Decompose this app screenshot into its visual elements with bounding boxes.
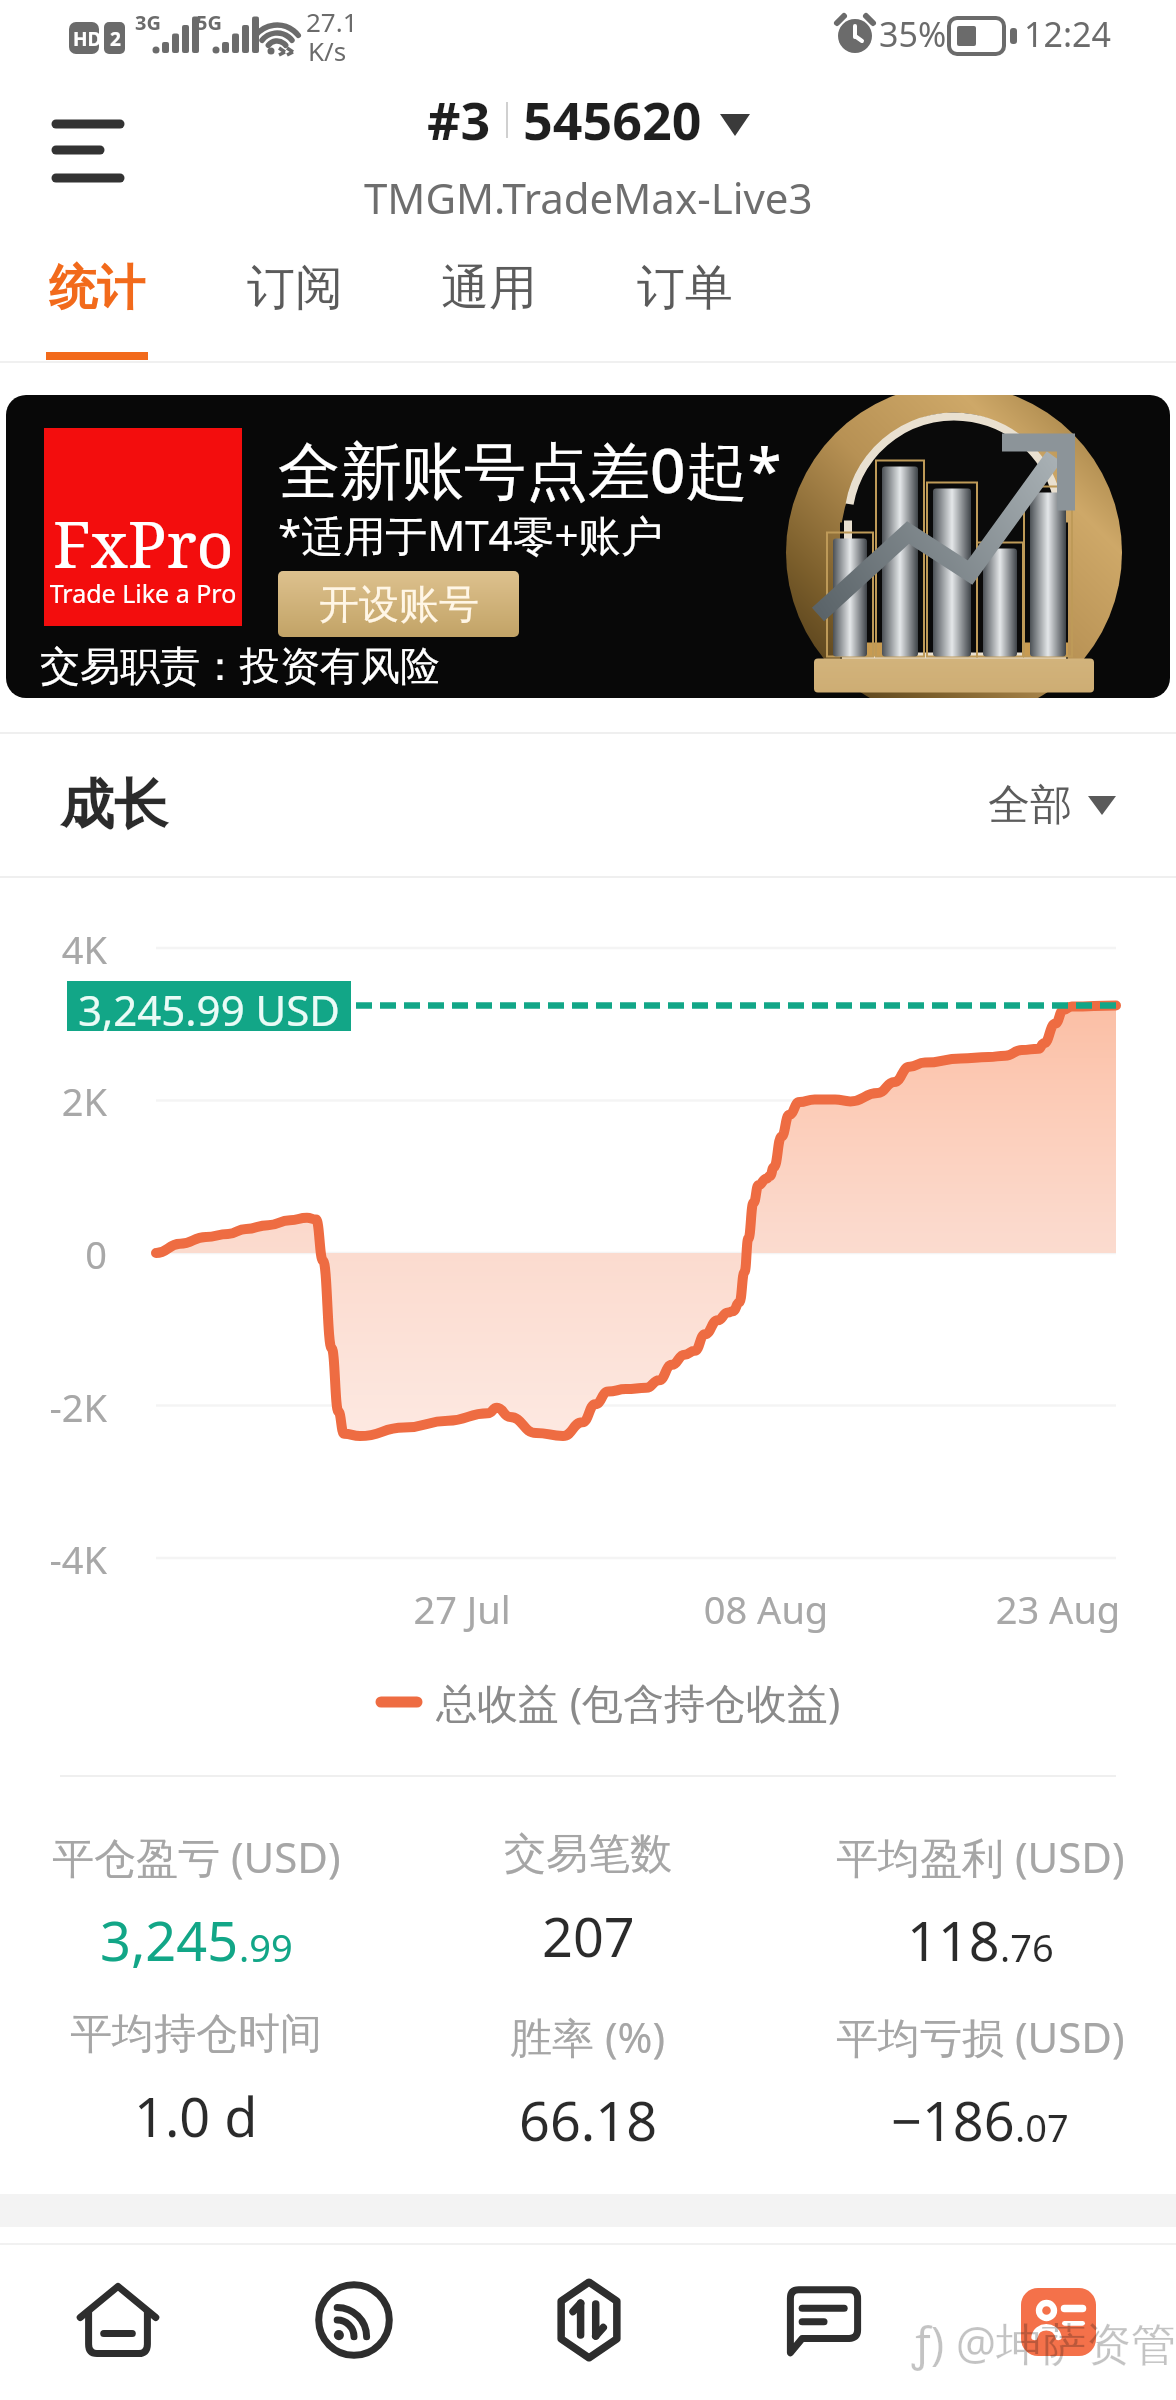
staticText: 平均亏损 (USD) [836, 2008, 1125, 2065]
button[interactable]: Menu [30, 95, 146, 207]
staticText: 全部 [988, 779, 1072, 832]
staticText: 08 Aug [666, 1583, 866, 1635]
staticText: Trade Like a Pro [44, 576, 242, 610]
staticText: 4K [0, 923, 107, 975]
staticText: 胜率 (%) [510, 2008, 666, 2065]
staticText: 27 Jul [362, 1583, 562, 1635]
staticText: 27.1 [306, 4, 358, 39]
staticText: 118 [907, 1903, 1000, 1977]
button[interactable]: Home [0, 2246, 236, 2400]
staticText: 66.18 [519, 2083, 658, 2157]
button[interactable]: 订阅 [218, 240, 372, 362]
staticText: 平仓盈亏 (USD) [52, 1828, 341, 1885]
staticText: −186 [891, 2083, 1015, 2157]
staticText: 开设账号 [319, 579, 479, 629]
staticText: 通用 [441, 258, 537, 318]
staticText: 3G [135, 9, 161, 36]
staticText: 3,245 [100, 1903, 239, 1977]
staticText: -4K [0, 1533, 107, 1585]
staticText: 1.0 d [134, 2079, 258, 2153]
button[interactable]: 开设账号 [278, 571, 519, 637]
staticText: 交易职责：投资有风险 [40, 641, 440, 691]
button[interactable]: Profile [941, 2246, 1176, 2400]
staticText: .99 [239, 1921, 293, 1973]
staticText: 23 Aug [958, 1583, 1158, 1635]
staticText: 平均盈利 (USD) [836, 1828, 1125, 1885]
staticText: 总收益 (包含持仓收益) [436, 1674, 841, 1730]
staticText: HD [73, 26, 102, 52]
button[interactable]: 全部 [988, 779, 1116, 832]
staticText: 2 [110, 26, 121, 52]
staticText: -2K [0, 1381, 107, 1433]
staticText: 订阅 [247, 258, 343, 318]
staticText: 订单 [637, 258, 733, 318]
button[interactable]: Messages [706, 2246, 941, 2400]
staticText: #3 [427, 84, 491, 155]
staticText: 5G [196, 9, 222, 36]
staticText: *适用于MT4零+账户 [278, 506, 663, 563]
staticText: 3,245.99 USD [78, 981, 340, 1031]
staticText: 平均持仓时间 [70, 2008, 322, 2061]
button[interactable]: FxPro [6, 395, 1170, 698]
button[interactable]: Signals [236, 2246, 471, 2400]
staticText: 交易笔数 [504, 1828, 672, 1881]
staticText: ƒ) @坤萨资管 [912, 2312, 1176, 2373]
staticText: 成长 [60, 771, 168, 839]
staticText: FxPro [53, 500, 234, 587]
staticText: 35% [879, 11, 947, 57]
button[interactable]: Trade [471, 2246, 706, 2400]
staticText: .07 [1015, 2101, 1069, 2153]
button[interactable]: 订单 [608, 240, 762, 362]
button[interactable]: 通用 [412, 240, 566, 362]
staticText: TMGM.TradeMax-Live3 [364, 169, 813, 224]
staticText: 全新账号点差0起* [278, 427, 782, 512]
staticText: 12:24 [1024, 11, 1111, 57]
staticText: 545620 [523, 84, 702, 155]
staticText: 统计 [49, 258, 145, 318]
staticText: 2K [0, 1075, 107, 1127]
staticText: 207 [542, 1899, 635, 1973]
staticText: 0 [0, 1228, 107, 1280]
staticText: K/s [308, 33, 347, 68]
staticText: .76 [1000, 1921, 1054, 1973]
button[interactable]: 统计 [20, 240, 174, 362]
